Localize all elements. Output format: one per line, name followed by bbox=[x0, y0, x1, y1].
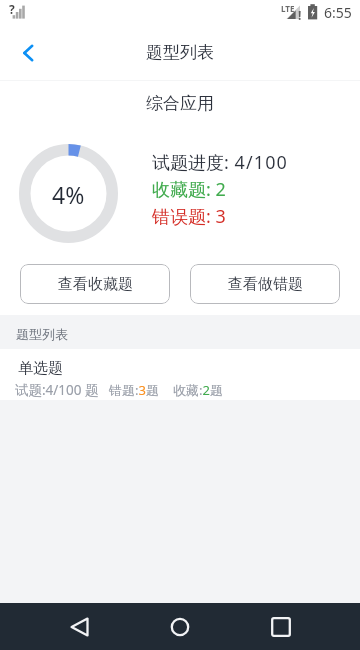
staticText: 题型列表 bbox=[16, 326, 68, 342]
staticText: 题型列表 bbox=[146, 42, 214, 63]
staticText: ? bbox=[9, 1, 15, 17]
button[interactable]: 查看收藏题 bbox=[20, 264, 170, 304]
staticText: 错误题: 3 bbox=[152, 204, 226, 229]
staticText: ! bbox=[298, 7, 302, 23]
staticText: 收藏题: 2 bbox=[152, 177, 226, 202]
staticText: 试题进度: 4/100 bbox=[152, 150, 288, 175]
staticText: 查看做错题 bbox=[228, 275, 303, 294]
staticText: 错题:3题 bbox=[109, 381, 159, 399]
button[interactable]: 单选题 bbox=[0, 349, 360, 400]
staticText: 单选题 bbox=[18, 359, 63, 378]
staticText: 6:55 bbox=[324, 3, 352, 22]
staticText: LTE bbox=[281, 3, 295, 14]
staticText: 试题:4/100 题 bbox=[15, 381, 99, 399]
staticText: 查看收藏题 bbox=[58, 275, 133, 294]
button[interactable]: Recent apps bbox=[251, 603, 311, 650]
button[interactable]: Back bbox=[0, 24, 56, 80]
button[interactable]: Back bbox=[50, 603, 110, 650]
staticText: 综合应用 bbox=[0, 93, 360, 114]
staticText: 收藏:2题 bbox=[173, 381, 223, 399]
button[interactable]: Home bbox=[150, 603, 210, 650]
button[interactable]: 查看做错题 bbox=[190, 264, 340, 304]
staticText: 4% bbox=[52, 179, 85, 210]
